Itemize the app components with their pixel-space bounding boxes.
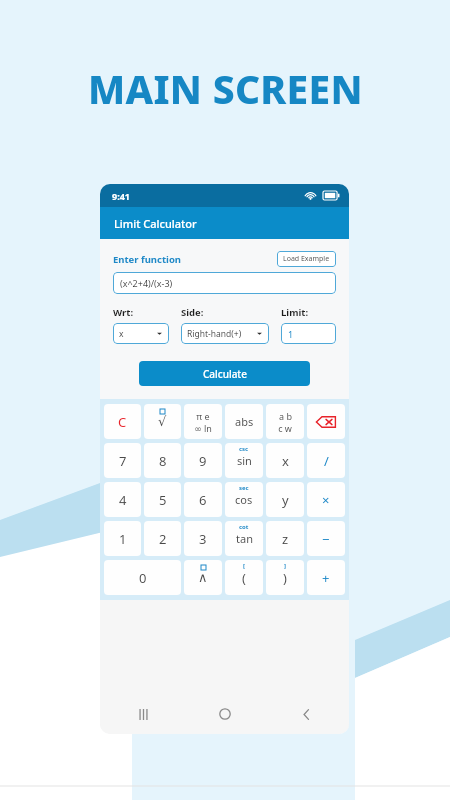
button[interactable]: 0: [104, 560, 181, 595]
button[interactable]: 5: [144, 482, 181, 517]
staticText: z: [282, 530, 289, 548]
button[interactable]: ): [266, 560, 304, 595]
button[interactable]: 3: [184, 521, 222, 556]
staticText: ∧: [198, 570, 208, 585]
button[interactable]: 6: [184, 482, 222, 517]
staticText: ]: [284, 562, 286, 570]
button[interactable]: π e ∞ ln: [184, 404, 222, 439]
staticText: abs: [235, 414, 254, 429]
button[interactable]: −: [307, 521, 345, 556]
staticText: 8: [159, 452, 167, 470]
staticText: y: [282, 491, 289, 509]
button[interactable]: √: [144, 404, 181, 439]
staticText: 9:41: [112, 190, 130, 202]
staticText: sec: [239, 484, 249, 492]
staticText: ∞ ln: [194, 422, 212, 434]
staticText: ×: [322, 491, 330, 509]
button[interactable]: (: [225, 560, 263, 595]
staticText: 6: [199, 491, 207, 509]
staticText: c w: [278, 422, 292, 434]
button[interactable]: x: [266, 443, 304, 478]
staticText: x: [119, 328, 124, 340]
button[interactable]: ∧: [184, 560, 222, 595]
button[interactable]: 7: [104, 443, 141, 478]
button[interactable]: z: [266, 521, 304, 556]
staticText: ): [283, 569, 287, 587]
button[interactable]: C: [104, 404, 141, 439]
staticText: (: [242, 569, 246, 587]
staticText: √: [158, 414, 167, 429]
staticText: 2: [159, 530, 167, 548]
button[interactable]: 9: [184, 443, 222, 478]
staticText: Limit Calculator: [114, 216, 197, 231]
button[interactable]: ×: [307, 482, 345, 517]
staticText: [: [243, 562, 245, 570]
button[interactable]: +: [307, 560, 345, 595]
staticText: π e: [196, 410, 210, 422]
staticText: 9: [199, 452, 207, 470]
button[interactable]: Home: [212, 701, 238, 727]
staticText: 5: [159, 491, 167, 509]
button[interactable]: 8: [144, 443, 181, 478]
staticText: x: [282, 452, 289, 470]
button[interactable]: sin: [225, 443, 263, 478]
staticText: C: [118, 413, 127, 431]
staticText: tan: [236, 531, 253, 546]
staticText: cot: [239, 523, 249, 531]
button[interactable]: cos: [225, 482, 263, 517]
staticText: a b: [279, 410, 292, 422]
button[interactable]: Right-hand(+): [181, 323, 269, 344]
button[interactable]: Recents: [130, 701, 156, 727]
staticText: 7: [119, 452, 127, 470]
staticText: 0: [139, 569, 147, 587]
staticText: /: [324, 452, 329, 470]
button[interactable]: 2: [144, 521, 181, 556]
staticText: Side:: [181, 306, 204, 319]
staticText: csc: [239, 445, 249, 453]
button[interactable]: (x^2+4)/(x-3): [113, 272, 336, 294]
staticText: Wrt:: [113, 306, 134, 319]
button[interactable]: Back: [293, 701, 319, 727]
staticText: cos: [235, 492, 253, 507]
button[interactable]: 4: [104, 482, 141, 517]
button[interactable]: Load Example: [277, 251, 336, 267]
staticText: Load Example: [283, 254, 330, 264]
button[interactable]: x: [113, 323, 169, 344]
staticText: Limit:: [281, 306, 309, 319]
staticText: +: [322, 569, 330, 587]
button[interactable]: Backspace: [307, 404, 345, 439]
button[interactable]: abs: [225, 404, 263, 439]
staticText: sin: [237, 453, 252, 468]
staticText: 1: [288, 328, 294, 340]
staticText: −: [322, 530, 330, 548]
staticText: Enter function: [113, 253, 182, 266]
button[interactable]: /: [307, 443, 345, 478]
staticText: 1: [119, 530, 127, 548]
button[interactable]: tan: [225, 521, 263, 556]
staticText: 3: [199, 530, 207, 548]
button[interactable]: a b c w: [266, 404, 304, 439]
button[interactable]: Calculate: [139, 361, 310, 386]
button[interactable]: 1: [104, 521, 141, 556]
staticText: Calculate: [203, 367, 247, 381]
staticText: (x^2+4)/(x-3): [120, 277, 173, 289]
staticText: MAIN SCREEN: [88, 62, 363, 115]
button[interactable]: y: [266, 482, 304, 517]
staticText: 4: [119, 491, 127, 509]
button[interactable]: 1: [281, 323, 336, 344]
staticText: Right-hand(+): [187, 328, 242, 340]
